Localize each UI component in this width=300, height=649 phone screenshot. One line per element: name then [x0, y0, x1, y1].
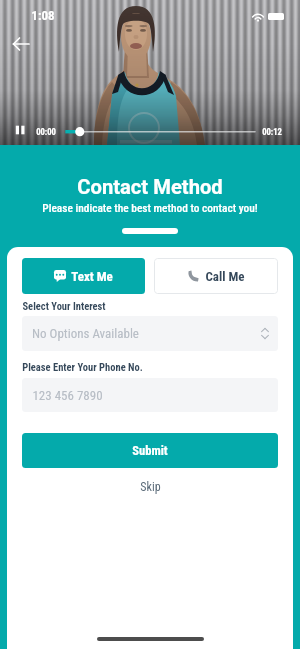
button[interactable]: No Options Available: [22, 316, 278, 351]
staticText: Submit: [132, 443, 168, 458]
staticText: Call Me: [205, 269, 245, 284]
staticText: Text Me: [71, 269, 113, 284]
staticText: 1:08: [31, 8, 55, 23]
staticText: Skip: [140, 480, 161, 494]
button[interactable]: Submit: [22, 433, 278, 468]
staticText: 00:00: [36, 127, 56, 137]
staticText: No Options Available: [32, 326, 139, 341]
staticText: Please Enter Your Phone No.: [22, 361, 143, 373]
button[interactable]: Text Me: [22, 258, 145, 294]
staticText: Please indicate the best method to conta…: [0, 201, 300, 214]
staticText: 123 456 7890: [32, 388, 103, 403]
staticText: 00:12: [262, 127, 282, 137]
staticText: Contact Method: [0, 175, 300, 199]
button[interactable]: Call Me: [154, 258, 278, 294]
button[interactable]: 123 456 7890: [22, 378, 278, 412]
button[interactable]: Back: [8, 31, 34, 57]
button[interactable]: Skip: [22, 475, 278, 499]
staticText: Select Your Interest: [22, 300, 106, 312]
button[interactable]: Pause: [13, 125, 27, 137]
